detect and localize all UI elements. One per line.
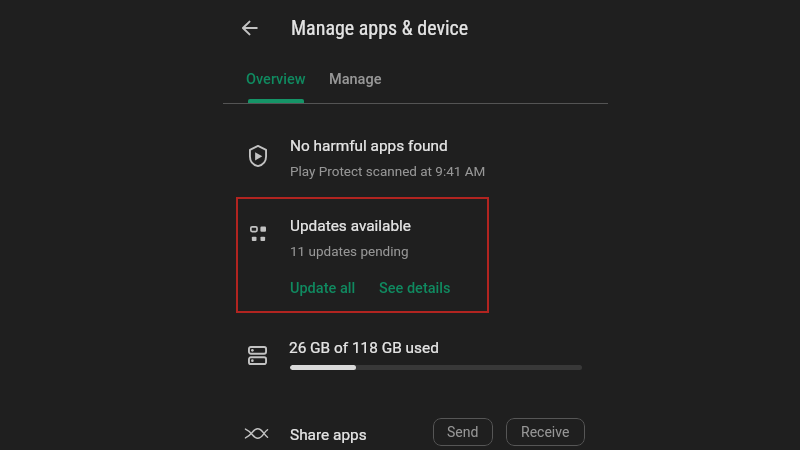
staticText: Play Protect scanned at 9:41 AM	[290, 163, 486, 179]
button[interactable]: Receive	[506, 418, 585, 446]
button[interactable]: Update all	[286, 276, 360, 301]
staticText: Manage	[329, 71, 382, 88]
button[interactable]: See details	[375, 276, 455, 301]
staticText: Updates available	[290, 217, 412, 235]
staticText: Receive	[521, 424, 570, 440]
staticText: No harmful apps found	[290, 137, 448, 155]
staticText: See details	[379, 280, 451, 297]
staticText: Send	[447, 424, 479, 440]
staticText: Share apps	[290, 426, 367, 444]
button[interactable]: 26 GB of 118 GB used	[232, 326, 608, 384]
button[interactable]: Manage	[322, 62, 388, 102]
button[interactable]: No harmful apps found	[232, 122, 608, 188]
button[interactable]: Share apps	[232, 408, 608, 450]
staticText: 26 GB of 118 GB used	[289, 339, 439, 357]
staticText: Manage apps & device	[291, 16, 469, 39]
staticText: Update all	[290, 280, 356, 297]
staticText: 11 updates pending	[290, 243, 409, 259]
button[interactable]: Send	[433, 418, 493, 446]
staticText: Overview	[246, 71, 306, 88]
button[interactable]: Updates available	[236, 197, 489, 313]
button[interactable]: Back	[235, 13, 265, 43]
button[interactable]: Overview	[234, 62, 318, 102]
